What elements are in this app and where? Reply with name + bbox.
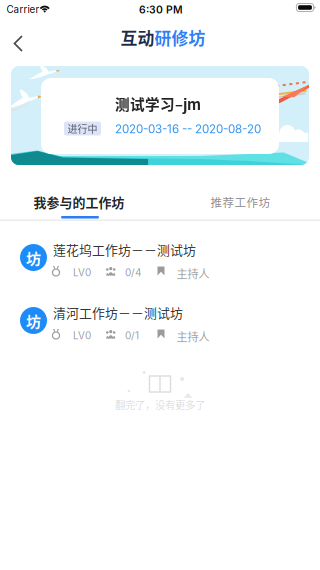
staticText: 我参与的工作坊 — [33, 192, 124, 211]
staticText: 0/1 — [125, 329, 139, 342]
staticText: 莲花坞工作坊－－测试坊 — [53, 240, 196, 259]
staticText: 翻完了，没有更多了 — [115, 397, 205, 412]
staticText: LV0 — [73, 266, 91, 279]
staticText: 推荐工作坊 — [210, 193, 270, 210]
button[interactable]: 坊 — [0, 228, 320, 291]
staticText: 坊 — [26, 247, 41, 269]
button[interactable]: 我参与的工作坊 — [0, 183, 140, 218]
staticText: 2020-03-16 -- 2020-08-20 — [115, 122, 261, 136]
button[interactable]: 坊 — [0, 291, 320, 354]
staticText: 0/4 — [125, 266, 141, 279]
staticText: 测试学习–jm — [115, 93, 201, 114]
staticText: 进行中 — [67, 121, 97, 136]
staticText: 清河工作坊－－测试坊 — [53, 303, 183, 322]
staticText: LV0 — [73, 329, 91, 342]
staticText: 6:30 PM — [139, 3, 183, 16]
staticText: Carrier — [6, 3, 39, 15]
staticText: 互动 — [120, 25, 154, 50]
staticText: 坊 — [26, 310, 41, 332]
staticText: 研修坊 — [154, 25, 205, 50]
staticText: 主持人 — [176, 265, 209, 281]
button[interactable]: 推荐工作坊 — [180, 183, 300, 218]
staticText: 主持人 — [176, 328, 209, 344]
button[interactable]: Back — [4, 28, 38, 59]
